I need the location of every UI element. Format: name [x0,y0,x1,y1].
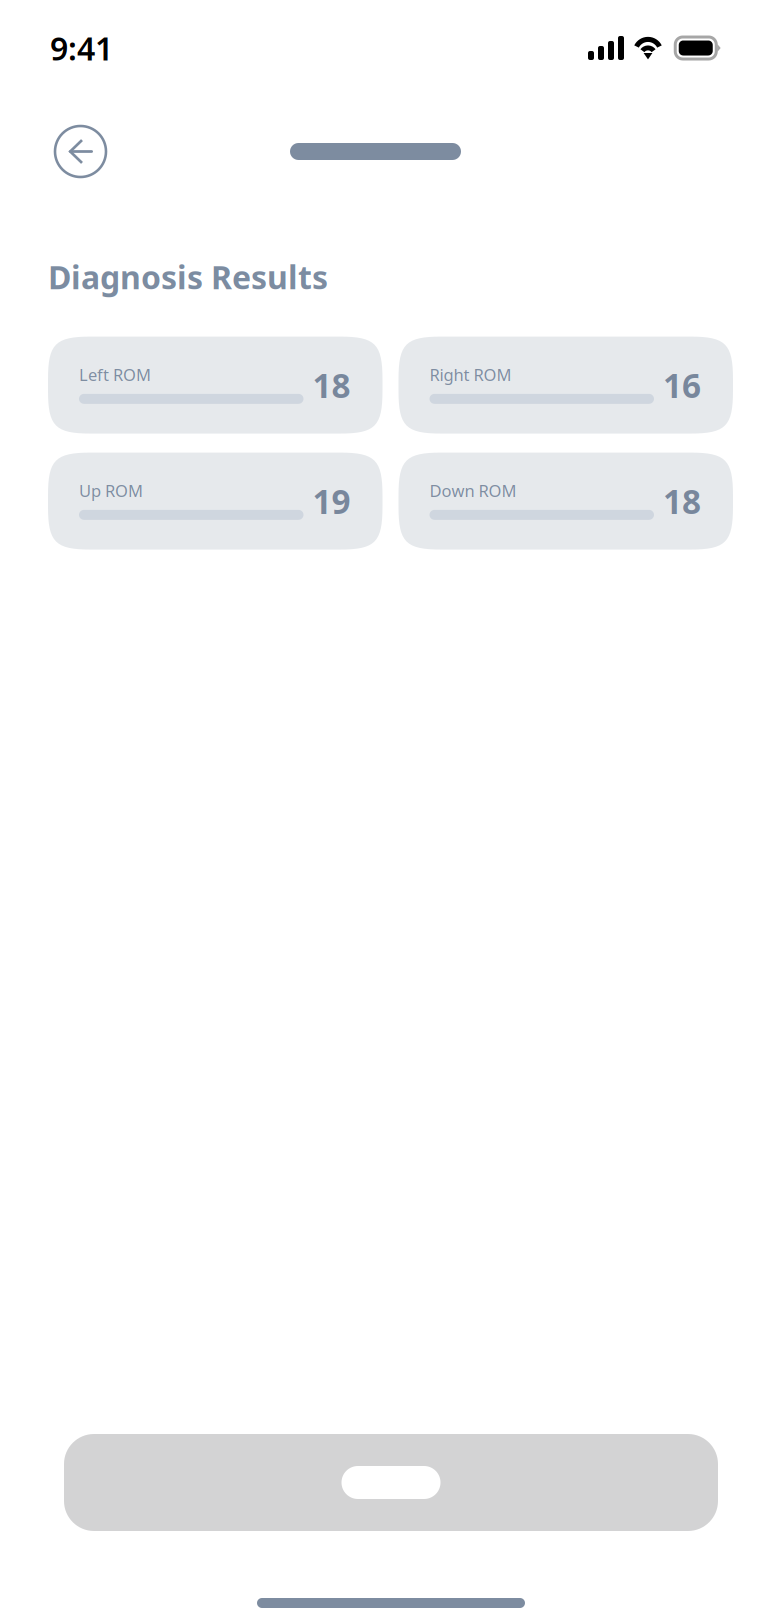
button[interactable]: Down ROM [398,453,733,550]
staticText: 19 [312,478,350,524]
staticText: 16 [663,362,701,408]
staticText: Right ROM [429,363,511,386]
button[interactable]: Left ROM [48,337,382,434]
staticText: 9:41 [50,26,113,70]
button[interactable] [64,1434,718,1531]
staticText: Left ROM [79,363,151,386]
staticText: 18 [312,362,350,408]
staticText: Up ROM [79,479,143,502]
staticText: Down ROM [429,479,516,502]
button[interactable]: Back [55,126,106,177]
staticText: 18 [663,478,701,524]
staticText: Diagnosis Results [48,255,328,299]
button[interactable]: Up ROM [48,453,382,550]
button[interactable]: Right ROM [398,337,733,434]
